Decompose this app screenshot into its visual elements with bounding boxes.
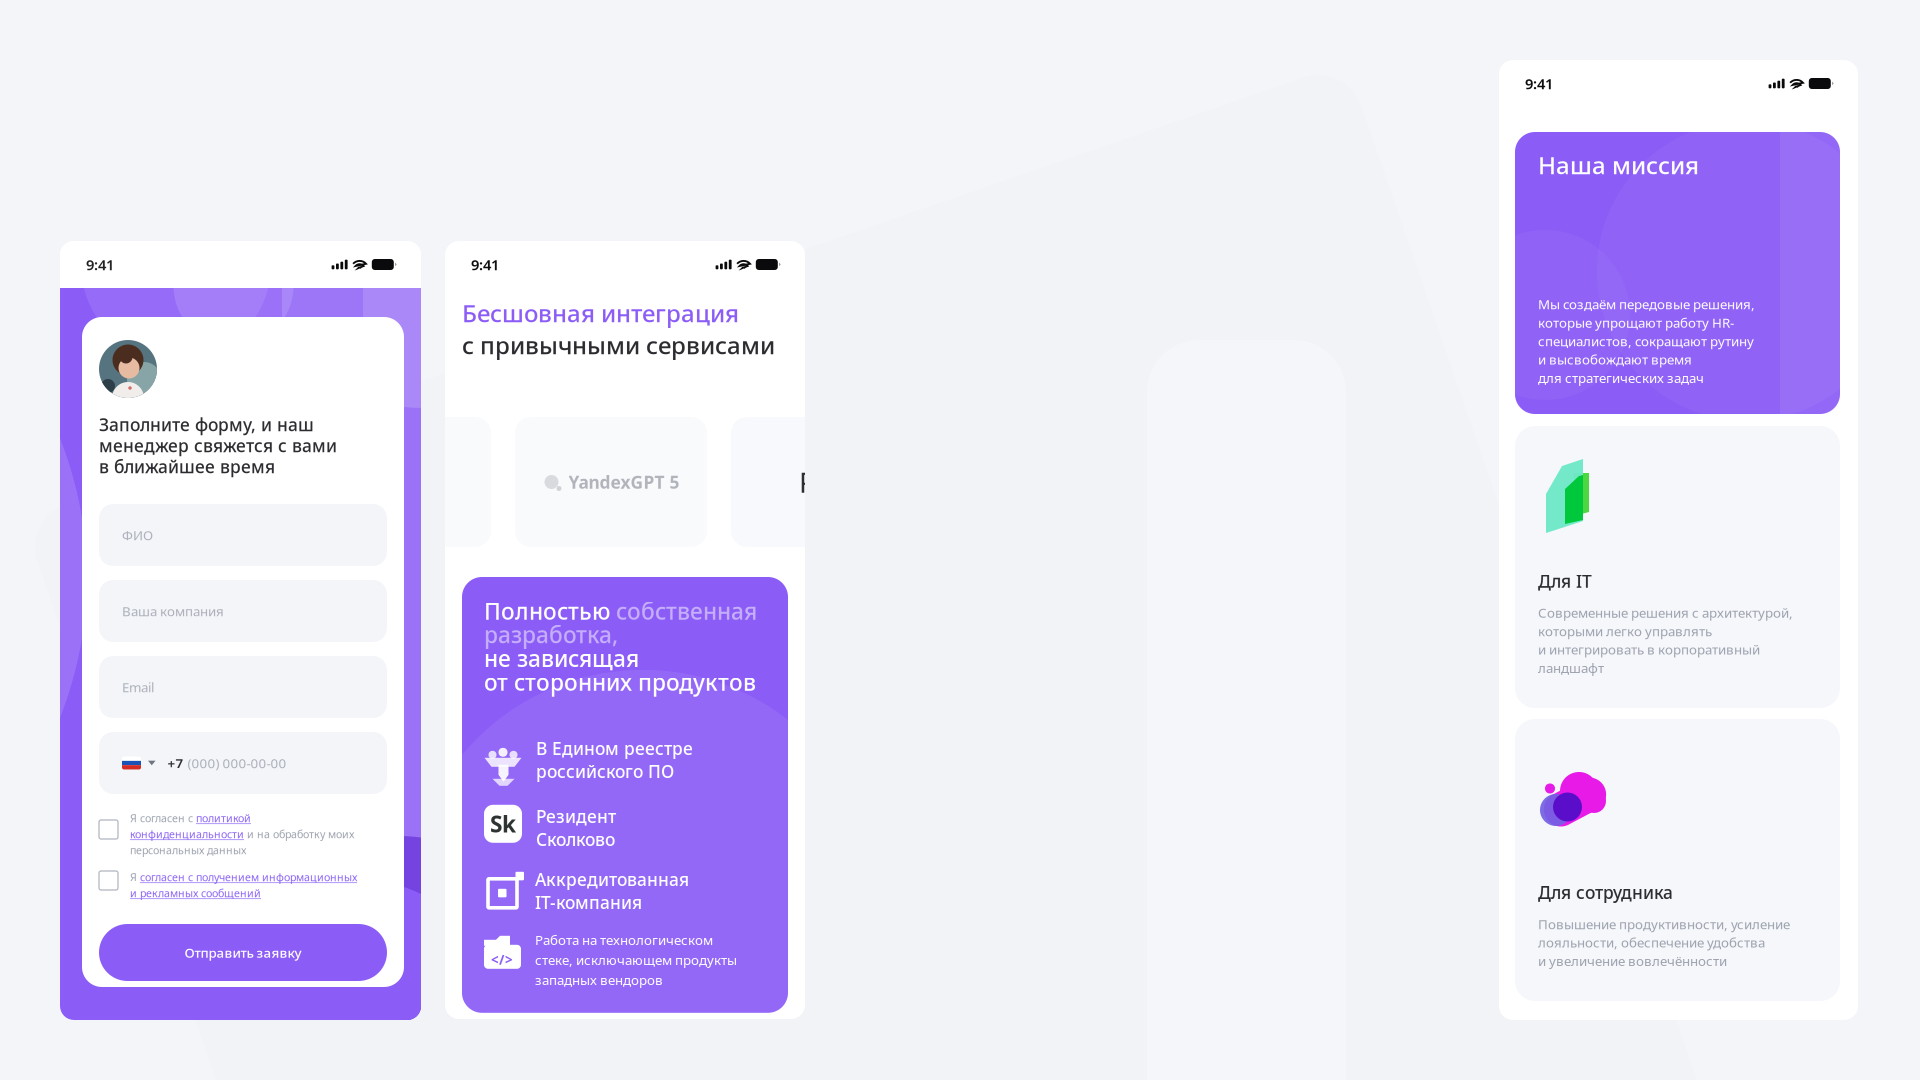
staticText: в ближайшее время [99,455,275,478]
staticText: которые упрощают работу HR- [1538,314,1734,331]
button[interactable]: Для IT [1515,426,1840,708]
staticText: 9:41 [86,255,114,274]
staticText: Наша миссия [1538,149,1699,181]
staticText: Современные решения с архитектурой, [1538,604,1793,621]
staticText: для стратегических задач [1538,369,1704,387]
staticText: и увеличение вовлечённости [1538,952,1727,970]
button[interactable]: Отправить заявку [99,924,387,981]
button[interactable]: Я [99,869,387,901]
staticText: Полностью [484,596,616,626]
staticText: ФИО [122,526,153,544]
button[interactable]: +7 [99,732,387,794]
staticText: Бесшовная интеграция [462,297,739,329]
button[interactable]: Для сотрудника [1515,719,1840,1001]
staticText: (000) 000-00-00 [187,754,286,772]
staticText: IT-компания [535,891,642,914]
staticText: и на обработку моих [244,827,354,841]
staticText: Отправить заявку [184,944,301,961]
staticText: от сторонних продуктов [484,667,756,697]
staticText: и рекламных сообщений [130,886,261,900]
staticText: Резидент [536,805,616,828]
button[interactable]: Я согласен с [99,810,387,858]
staticText: собственная [616,596,757,626]
staticText: 9:41 [1525,74,1553,93]
staticText: Email [122,678,154,696]
staticText: не зависящая [484,643,639,673]
staticText: разработка, [484,619,618,650]
staticText: Повышение продуктивности, усиление [1538,915,1790,933]
staticText: российского ПО [536,760,674,783]
button[interactable]: Email [99,656,387,718]
staticText: специалистов, сокращают рутину [1538,332,1754,350]
staticText: Для IT [1538,569,1592,592]
staticText: ландшафт [1538,659,1604,677]
staticText: Для сотрудника [1538,881,1673,904]
staticText: Работа на технологическом [535,931,713,949]
staticText: западных вендоров [535,971,663,989]
staticText: В Едином реестре [536,737,693,760]
staticText: которыми легко управлять [1538,622,1712,640]
staticText: согласен с получением информационных [140,870,357,884]
staticText: менеджер свяжется с вами [99,434,337,457]
staticText: Ваша компания [122,602,224,620]
staticText: политикой [196,811,251,825]
staticText: Заполните форму, и наш [99,413,314,436]
staticText: Я согласен с [130,811,196,825]
button[interactable]: Ваша компания [99,580,387,642]
staticText: Я [130,870,140,884]
staticText: Сколково [536,828,615,851]
staticText: с привычными сервисами [462,329,775,361]
staticText: </> [491,951,513,968]
staticText: персональных данных [130,843,246,857]
staticText: 9:41 [471,255,499,274]
staticText: Аккредитованная [535,868,689,891]
button[interactable]: ФИО [99,504,387,566]
staticText: и высвобождают время [1538,350,1692,368]
staticText: и интегрировать в корпоративный [1538,640,1760,658]
staticText: конфиденциальности [130,827,244,841]
staticText: PRO [799,463,855,501]
staticText: YandexGPT 5 [568,470,679,493]
staticText: стеке, исключающем продукты [535,951,737,969]
staticText: Sk [490,809,516,839]
staticText: +7 [167,754,183,772]
staticText: Мы создаём передовые решения, [1538,295,1755,313]
staticText: лояльности, обеспечение удобства [1538,933,1765,951]
